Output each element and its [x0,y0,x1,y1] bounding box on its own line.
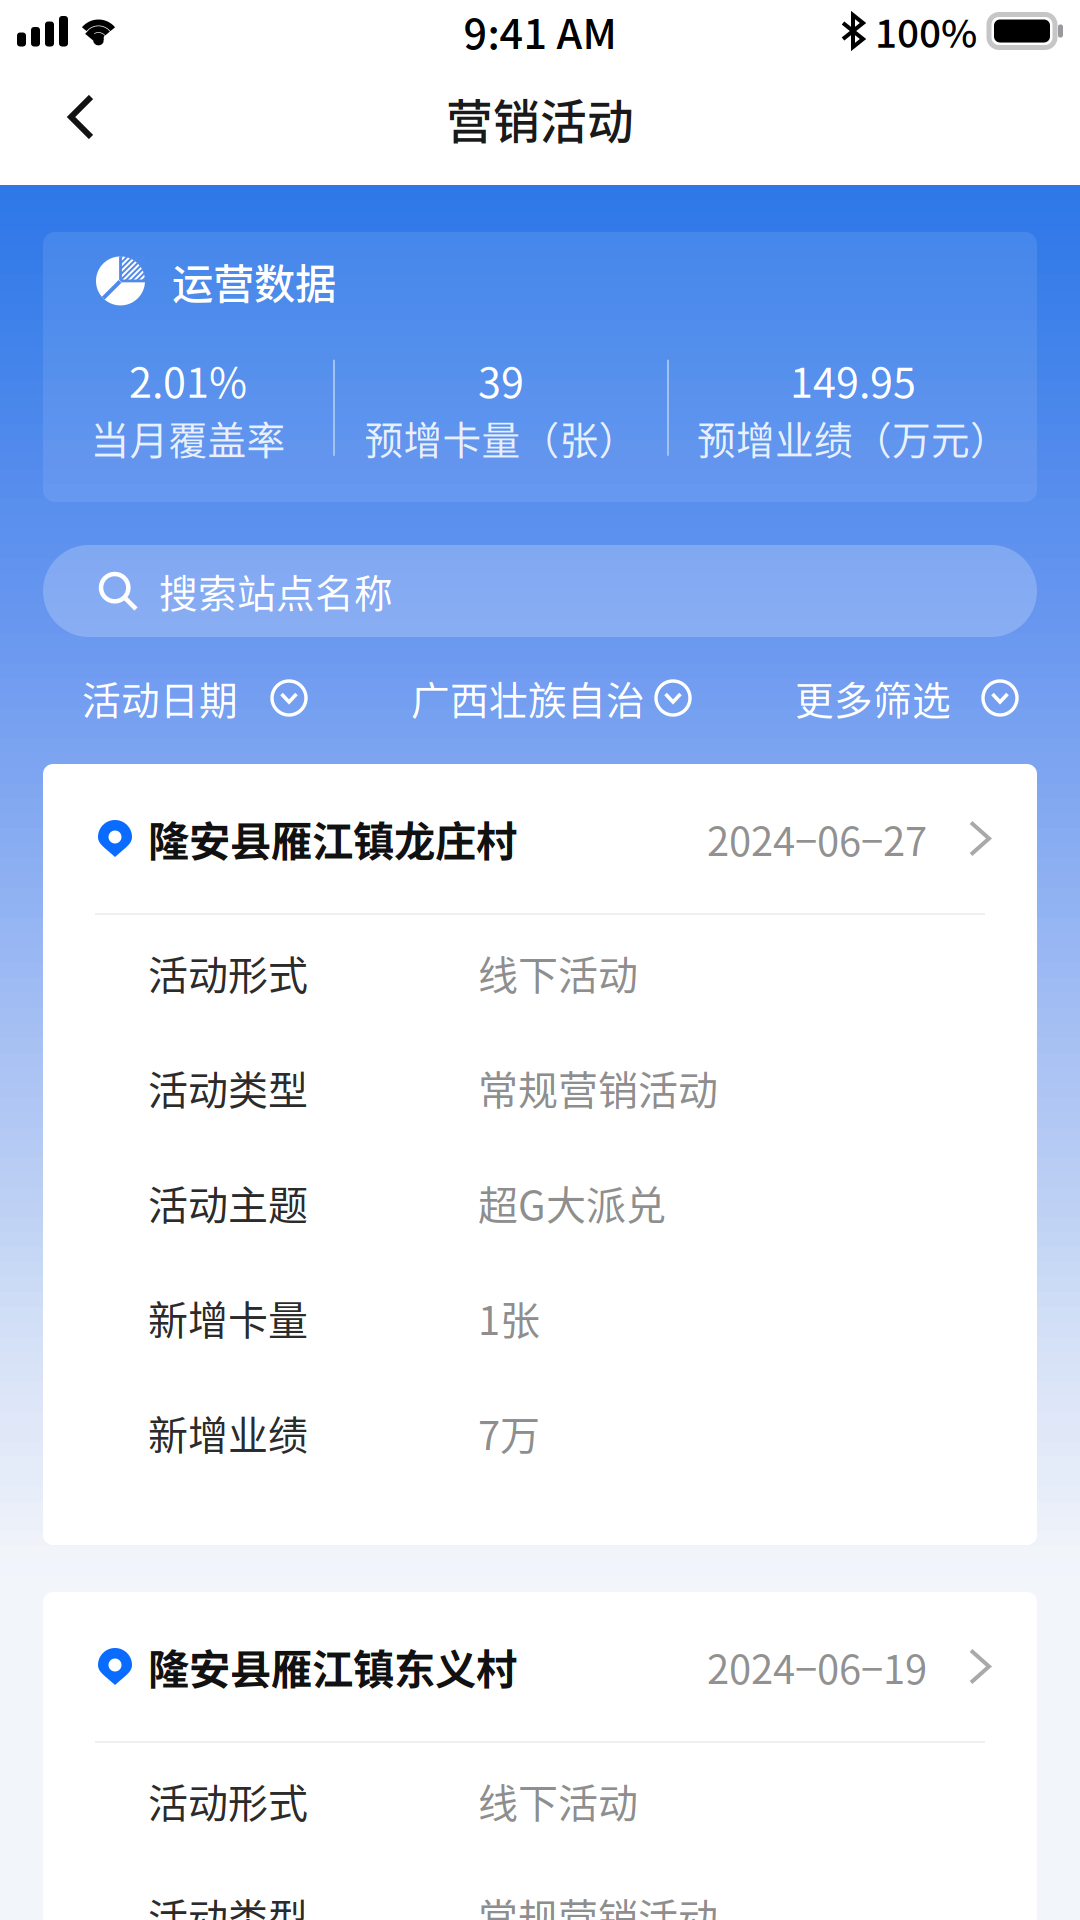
button[interactable]: Back [26,62,136,172]
staticText: 营销活动 [446,85,634,152]
staticText: 预增卡量（张） [364,410,637,466]
staticText: 活动类型 [148,1058,308,1116]
staticText: 2.01% [129,350,247,410]
button[interactable]: 搜索站点名称 [43,545,1037,637]
staticText: 2024−06−19 [707,1637,927,1695]
staticText: 活动类型 [148,1886,308,1920]
button[interactable]: 活动日期 [0,663,307,733]
staticText: 隆安县雁江镇东义村 [148,1637,517,1696]
staticText: 9:41 AM [463,1,616,61]
staticText: 活动形式 [148,1771,308,1829]
staticText: 隆安县雁江镇龙庄村 [148,809,517,868]
staticText: 活动日期 [82,670,238,726]
staticText: 当月覆盖率 [90,410,285,466]
staticText: 活动主题 [148,1173,308,1231]
staticText: 运营数据 [172,251,336,311]
staticText: 新增卡量 [148,1288,308,1346]
staticText: 100% [875,3,977,59]
staticText: 新增业绩 [148,1403,308,1461]
staticText: 常规营销活动 [478,1886,718,1920]
staticText: 活动形式 [148,943,308,1001]
staticText: 2024−06−27 [707,809,927,867]
staticText: 超G大派兑 [478,1173,666,1231]
staticText: 7万 [478,1403,540,1461]
staticText: 149.95 [790,350,916,410]
staticText: 39 [478,350,524,410]
button[interactable]: 广西壮族自治 [411,663,691,733]
staticText: 常规营销活动 [478,1058,718,1116]
button[interactable]: 隆安县雁江镇龙庄村 [43,764,1037,913]
staticText: 搜索站点名称 [159,563,393,619]
button[interactable]: 更多筛选 [795,663,1080,733]
staticText: 更多筛选 [795,670,951,726]
staticText: 线下活动 [478,1771,638,1829]
staticText: 预增业绩（万元） [697,410,1009,466]
button[interactable]: 隆安县雁江镇东义村 [43,1592,1037,1741]
staticText: 1张 [478,1288,540,1346]
staticText: 线下活动 [478,943,638,1001]
staticText: 广西壮族自治 [411,670,645,726]
